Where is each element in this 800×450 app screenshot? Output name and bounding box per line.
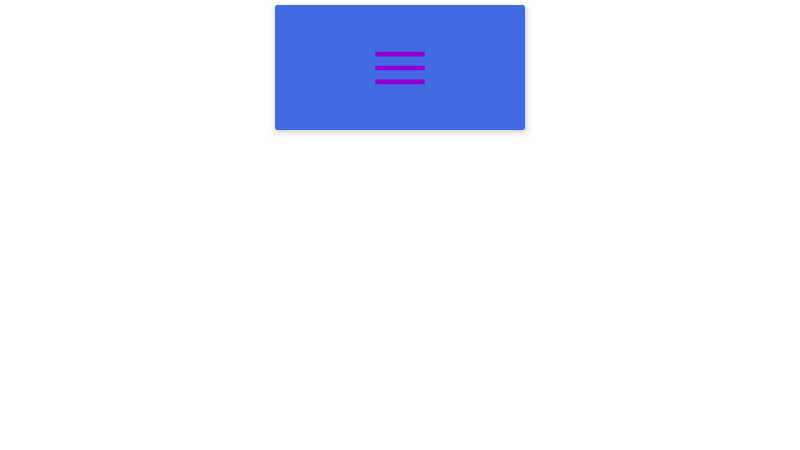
button[interactable]: Open navigation menu [372,40,428,96]
